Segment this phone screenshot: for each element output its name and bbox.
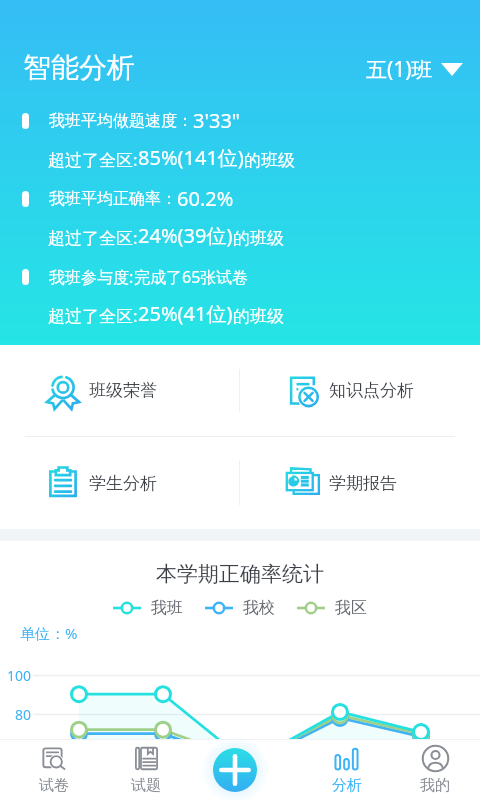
staticText: 班级荣誉	[89, 380, 157, 401]
button[interactable]: 五(1)班	[356, 49, 480, 90]
staticText: 24%(39位)	[138, 222, 233, 249]
staticText: 85%(141位)	[138, 144, 244, 171]
staticText: 我校	[243, 598, 275, 618]
staticText: 我班	[151, 598, 183, 618]
button[interactable]: 学期报告	[240, 437, 480, 529]
button[interactable]: 分析	[303, 739, 390, 800]
staticText: 我区	[335, 598, 367, 618]
staticText: 我班平均做题速度：	[49, 111, 193, 131]
staticText: 学生分析	[89, 473, 157, 494]
button[interactable]: 我校	[205, 598, 275, 618]
staticText: 五(1)班	[366, 55, 433, 84]
staticText: 试卷	[39, 776, 69, 795]
staticText: 分析	[332, 776, 362, 795]
button[interactable]: Add	[213, 748, 257, 792]
button[interactable]: 知识点分析	[240, 345, 480, 436]
staticText: 完成了65张试卷	[134, 266, 249, 288]
staticText: 的班级	[233, 228, 284, 249]
staticText: 100	[7, 666, 32, 685]
staticText: 的班级	[244, 150, 295, 171]
button[interactable]: 试卷	[0, 739, 107, 800]
staticText: 60.2%	[177, 185, 234, 212]
staticText: 本学期正确率统计	[0, 561, 480, 587]
staticText: 超过了全区:	[48, 226, 138, 249]
staticText: 我班参与度:	[49, 266, 134, 288]
staticText: 25%(41位)	[138, 300, 233, 327]
staticText: 的班级	[233, 306, 284, 327]
staticText: 学期报告	[329, 473, 397, 494]
button[interactable]: 学生分析	[0, 437, 239, 529]
staticText: 我班平均正确率：	[49, 189, 177, 209]
staticText: 超过了全区:	[48, 148, 138, 171]
staticText: 单位：%	[20, 623, 78, 643]
button[interactable]: 试题	[107, 739, 185, 800]
staticText: 80	[15, 705, 32, 724]
staticText: 我的	[420, 776, 450, 795]
button[interactable]: 我的	[390, 739, 480, 800]
button[interactable]: 我区	[297, 598, 367, 618]
button[interactable]: 我班	[113, 598, 183, 618]
button[interactable]: 班级荣誉	[0, 345, 239, 436]
staticText: 试题	[131, 776, 161, 795]
staticText: 智能分析	[23, 50, 135, 85]
staticText: 知识点分析	[329, 380, 414, 401]
staticText: 超过了全区:	[48, 304, 138, 327]
staticText: 3'33"	[193, 107, 240, 134]
